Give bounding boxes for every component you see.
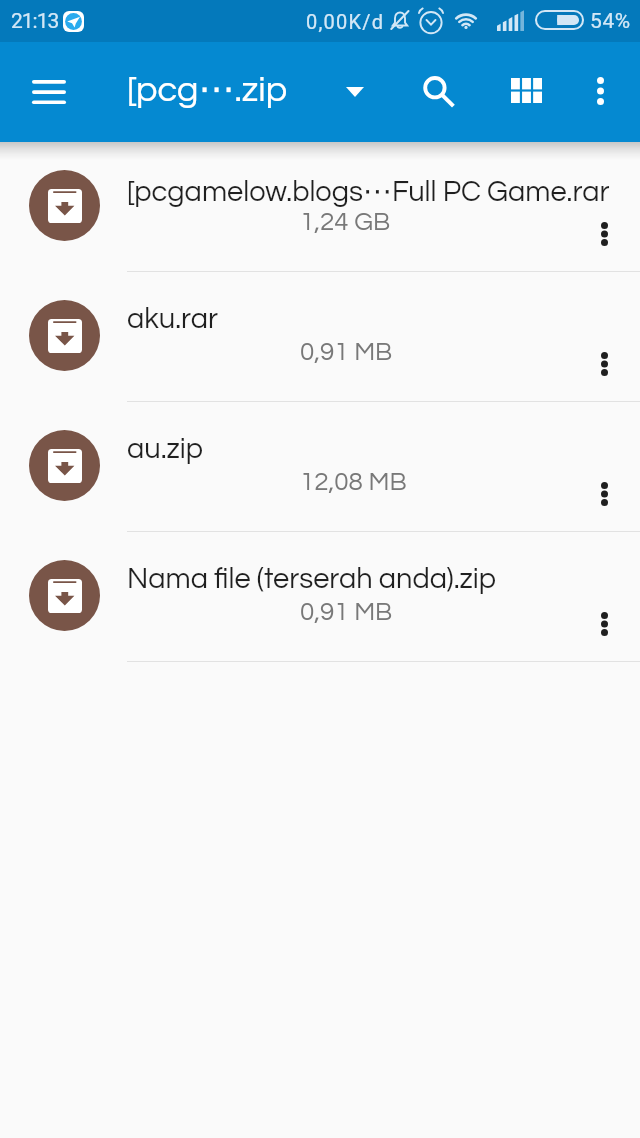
button[interactable]: [pcgamelow.blogs⋯Full PC Game.rar (0, 142, 640, 272)
button[interactable]: Open navigation drawer (25, 68, 73, 116)
staticText: [pcgamelow.blogs⋯Full PC Game.rar (127, 174, 627, 208)
staticText: 0,00K/d (306, 10, 385, 33)
staticText: 0,91 MB (300, 599, 393, 626)
button[interactable]: aku.rar (0, 272, 640, 402)
staticText: aku.rar (127, 304, 627, 334)
staticText: 12,08 MB (300, 469, 407, 496)
button[interactable]: More options (580, 600, 628, 648)
button[interactable]: au.zip (0, 402, 640, 532)
button[interactable]: Change folder (331, 68, 379, 116)
staticText: 21:13 (11, 9, 59, 34)
staticText: au.zip (127, 434, 627, 464)
button[interactable]: More options (580, 340, 628, 388)
button[interactable]: Grid view (502, 66, 550, 114)
button[interactable]: More options (576, 67, 624, 115)
staticText: 54% (590, 9, 631, 34)
button[interactable]: Search (416, 69, 464, 117)
button[interactable]: More options (580, 210, 628, 258)
button[interactable]: Nama file (terserah anda).zip (0, 532, 640, 662)
staticText: 0,91 MB (300, 339, 393, 366)
staticText: 1,24 GB (300, 209, 391, 236)
button[interactable]: More options (580, 470, 628, 518)
staticText: Nama file (terserah anda).zip (127, 564, 627, 594)
button[interactable]: [pcg⋯.zip (127, 68, 288, 116)
